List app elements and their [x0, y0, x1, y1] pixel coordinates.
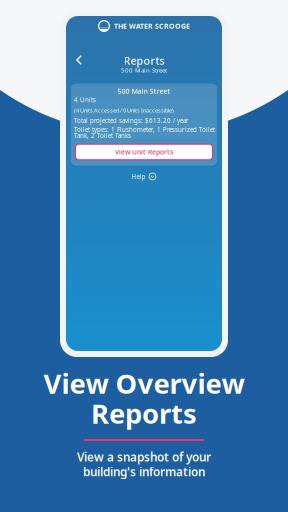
staticText: Toilet types: 1 Flushometer, 1 Pressuriz…	[74, 125, 215, 134]
button[interactable]: Back	[71, 52, 87, 68]
staticText: (4 Units Accessed / 0 Units Inaccessible…	[74, 106, 174, 114]
button[interactable]: View Unit Reports	[75, 144, 212, 160]
staticText: View Unit Reports	[115, 147, 173, 156]
staticText: View Overview	[43, 364, 244, 402]
staticText: building's information	[83, 464, 205, 480]
staticText: 500 Main Street	[121, 66, 167, 74]
staticText: Tank, 2 Toilet Tanks	[74, 131, 131, 140]
staticText: 500 Main Street	[117, 86, 170, 96]
staticText: View a snapshot of your	[77, 449, 211, 465]
staticText: Reports	[91, 395, 197, 432]
button[interactable]: Help	[119, 171, 169, 182]
staticText: THE WATER SCROOGE	[114, 21, 190, 31]
staticText: 4 Units	[74, 96, 96, 104]
staticText: Total projected savings: $613.20 / year	[74, 116, 189, 125]
staticText: Help	[131, 172, 145, 181]
staticText: Reports	[123, 53, 164, 68]
